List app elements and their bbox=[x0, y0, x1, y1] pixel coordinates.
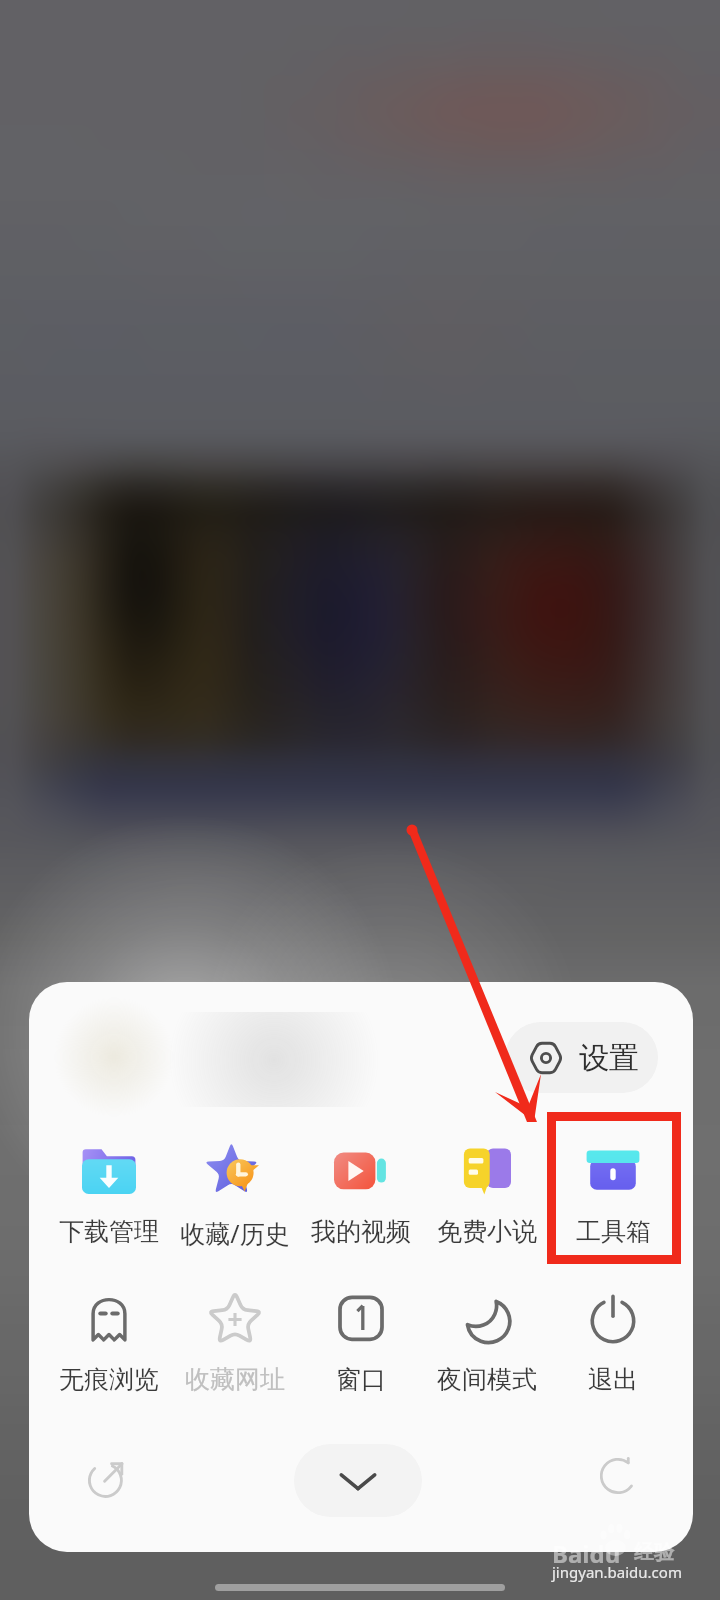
button[interactable]: Share bbox=[63, 1434, 151, 1522]
staticText: Baidu bbox=[552, 1537, 621, 1570]
staticText: jingyan.baidu.com bbox=[552, 1562, 682, 1582]
button[interactable]: 收藏网址 bbox=[172, 1288, 298, 1420]
staticText: 设置 bbox=[579, 1039, 639, 1077]
button[interactable]: 工具箱 bbox=[550, 1140, 676, 1272]
button[interactable]: 无痕浏览 bbox=[46, 1288, 172, 1420]
staticText: 下载管理 bbox=[59, 1216, 159, 1247]
staticText: 收藏/历史 bbox=[180, 1216, 290, 1250]
button[interactable]: 窗口 bbox=[298, 1288, 424, 1420]
button[interactable]: Refresh bbox=[574, 1432, 662, 1520]
button[interactable]: 夜间模式 bbox=[424, 1288, 550, 1420]
staticText: 我的视频 bbox=[311, 1216, 411, 1247]
button[interactable]: Collapse bbox=[294, 1444, 422, 1517]
button[interactable]: 免费小说 bbox=[424, 1140, 550, 1272]
staticText: 窗口 bbox=[336, 1364, 386, 1395]
staticText: 无痕浏览 bbox=[59, 1364, 159, 1395]
staticText: 夜间模式 bbox=[437, 1364, 537, 1395]
staticText: 工具箱 bbox=[576, 1216, 651, 1247]
button[interactable]: 退出 bbox=[550, 1288, 676, 1420]
button[interactable]: 下载管理 bbox=[46, 1140, 172, 1272]
staticText: 经验 bbox=[634, 1540, 674, 1565]
staticText: 退出 bbox=[588, 1364, 638, 1395]
staticText: 免费小说 bbox=[437, 1216, 537, 1247]
button[interactable]: 收藏/历史 bbox=[172, 1140, 298, 1272]
button[interactable]: 我的视频 bbox=[298, 1140, 424, 1272]
staticText: 收藏网址 bbox=[185, 1364, 285, 1395]
button[interactable]: 设置 bbox=[505, 1022, 658, 1093]
